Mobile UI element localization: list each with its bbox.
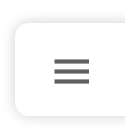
button[interactable]: Open navigation menu (49, 54, 94, 89)
